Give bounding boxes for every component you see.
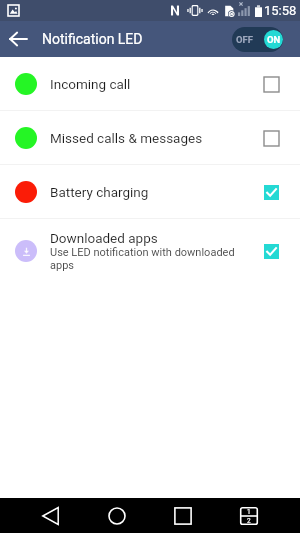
button[interactable]: Dual window: [216, 498, 282, 533]
staticText: Battery charging: [50, 184, 149, 200]
button[interactable]: Disabled: [259, 126, 283, 150]
button[interactable]: OFF: [232, 27, 283, 52]
staticText: Notification LED: [42, 31, 143, 47]
button[interactable]: Incoming call: [0, 57, 300, 110]
button[interactable]: Battery charging: [0, 165, 300, 218]
staticText: Use LED notification with downloaded app…: [50, 246, 255, 272]
button[interactable]: Enabled: [259, 239, 283, 263]
button[interactable]: Downloaded apps: [0, 219, 300, 283]
staticText: 1: [247, 508, 251, 516]
staticText: 15:58: [264, 3, 297, 18]
button[interactable]: Disabled: [259, 72, 283, 96]
staticText: OFF: [236, 34, 253, 45]
staticText: 2: [247, 517, 251, 525]
button[interactable]: Navigate up: [0, 21, 36, 57]
button[interactable]: Missed calls & messages: [0, 111, 300, 164]
button[interactable]: Enabled: [259, 180, 283, 204]
staticText: Missed calls & messages: [50, 130, 203, 146]
staticText: ON: [267, 34, 281, 45]
staticText: Downloaded apps: [50, 230, 158, 246]
staticText: Incoming call: [50, 76, 131, 92]
button[interactable]: Back: [18, 498, 84, 533]
button[interactable]: Home: [84, 498, 150, 533]
button[interactable]: Recent apps: [150, 498, 216, 533]
